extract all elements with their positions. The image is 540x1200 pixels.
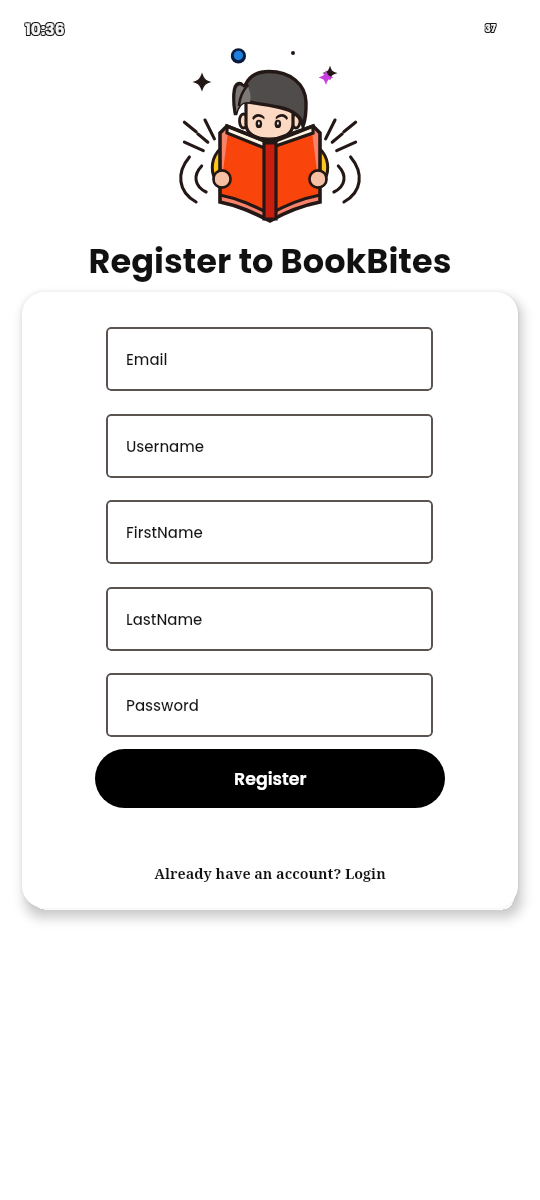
staticText: 37 <box>485 21 496 34</box>
other: Person reading a book illustration <box>170 42 370 232</box>
staticText: 37 <box>485 22 496 35</box>
staticText: 37 <box>485 23 496 36</box>
button[interactable]: Username <box>106 414 433 478</box>
staticText: 10:36 <box>24 20 64 42</box>
staticText: 10:36 <box>25 18 65 40</box>
staticText: LastName <box>126 609 203 630</box>
staticText: Register to BookBites <box>0 238 540 285</box>
staticText: 37 <box>484 23 495 36</box>
staticText: 37 <box>484 21 495 34</box>
staticText: 37 <box>486 21 497 34</box>
button[interactable]: LastName <box>106 587 433 651</box>
staticText: Register <box>234 767 307 791</box>
staticText: 10:36 <box>26 18 66 40</box>
staticText: 10:36 <box>26 20 66 42</box>
staticText: 10:36 <box>24 18 64 40</box>
staticText: 10:36 <box>25 20 65 42</box>
staticText: Username <box>126 436 205 457</box>
staticText: Password <box>126 695 199 716</box>
button[interactable]: Register <box>95 749 445 808</box>
staticText: 37 <box>484 22 495 35</box>
staticText: 10:36 <box>25 19 65 41</box>
staticText: 10:36 <box>24 19 64 41</box>
button[interactable]: Email <box>106 327 433 391</box>
staticText: Email <box>126 349 168 370</box>
staticText: 37 <box>486 23 497 36</box>
button[interactable]: Already have an account? Login <box>22 864 518 883</box>
staticText: 37 <box>486 22 497 35</box>
button[interactable]: Password <box>106 673 433 737</box>
staticText: FirstName <box>126 522 203 543</box>
button[interactable]: FirstName <box>106 500 433 564</box>
staticText: 10:36 <box>26 19 66 41</box>
